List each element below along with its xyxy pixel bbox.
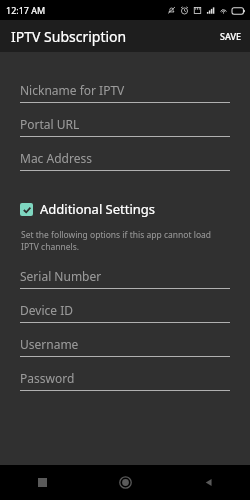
staticText: Device ID — [20, 302, 73, 318]
button[interactable]: Mac Address — [0, 150, 250, 171]
button[interactable]: Back — [167, 465, 250, 500]
staticText: IPTV Subscription — [11, 27, 127, 46]
button[interactable]: SAVE — [212, 24, 250, 48]
button[interactable]: Home — [84, 465, 167, 500]
button[interactable]: Nickname for IPTV — [0, 82, 250, 103]
staticText: Nickname for IPTV — [20, 82, 125, 98]
staticText: SAVE — [220, 30, 242, 42]
button[interactable]: Serial Number — [0, 268, 250, 289]
staticText: Additional Settings — [40, 200, 156, 218]
staticText: 12:17 AM — [6, 4, 46, 16]
staticText: Portal URL — [20, 116, 80, 132]
button[interactable]: Username — [0, 336, 250, 357]
staticText: Serial Number — [20, 268, 102, 284]
staticText: Set the following options if this app ca… — [21, 229, 212, 253]
staticText: Mac Address — [20, 150, 92, 166]
button[interactable]: Additional Settings — [0, 197, 250, 221]
button[interactable]: Password — [0, 370, 250, 391]
button[interactable]: Recents — [0, 465, 84, 500]
staticText: Username — [20, 336, 79, 352]
staticText: Password — [20, 370, 75, 386]
button[interactable]: Device ID — [0, 302, 250, 323]
button[interactable]: Portal URL — [0, 116, 250, 137]
